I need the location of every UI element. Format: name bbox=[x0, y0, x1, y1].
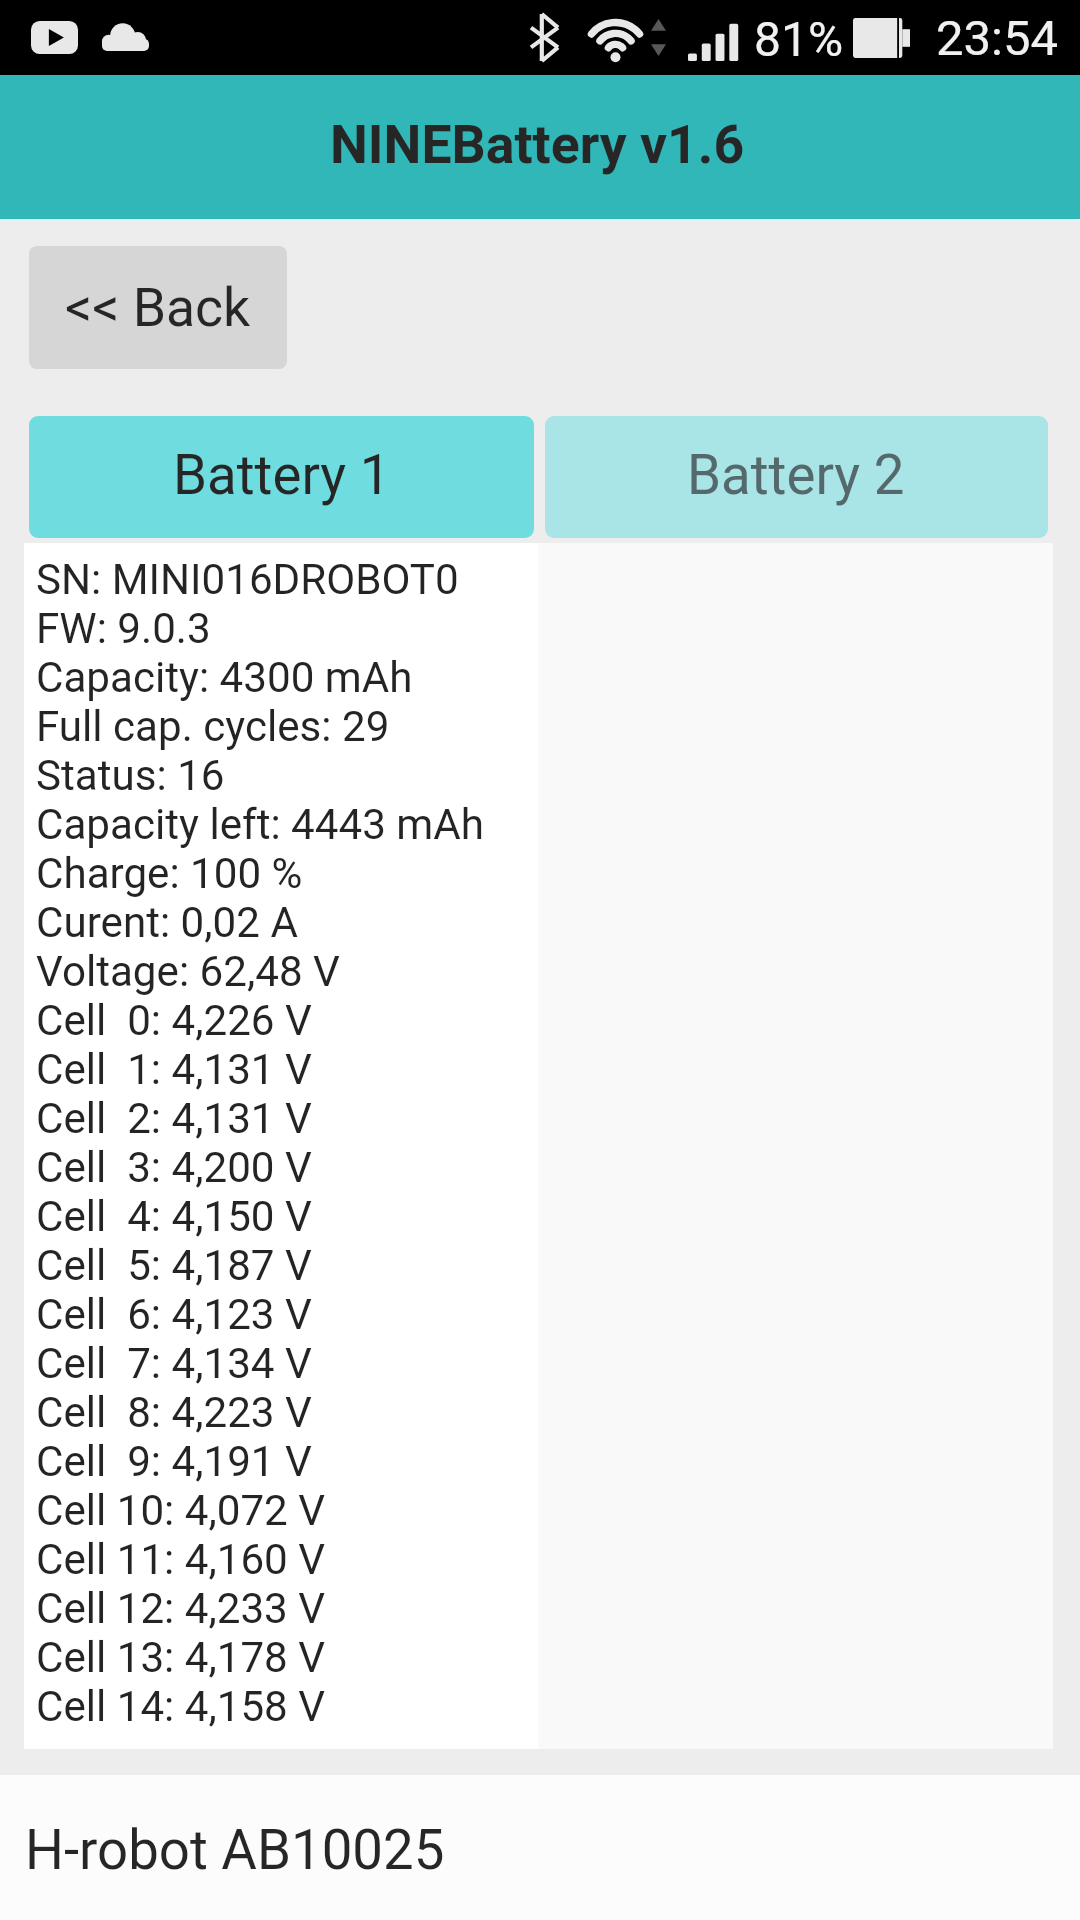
staticText: << Back bbox=[65, 276, 251, 339]
staticText: FW: 9.0.3 bbox=[36, 604, 211, 653]
staticText: Cell 2: 4,131 V bbox=[36, 1094, 312, 1143]
staticText: 23:54 bbox=[936, 10, 1059, 67]
staticText: Cell 12: 4,233 V bbox=[36, 1584, 326, 1633]
staticText: SN: MINI016DROBOT0 bbox=[36, 555, 459, 604]
staticText: H-robot AB10025 bbox=[25, 1818, 445, 1882]
staticText: Cell 9: 4,191 V bbox=[36, 1437, 312, 1486]
staticText: Cell 13: 4,178 V bbox=[36, 1633, 326, 1682]
staticText: Cell 5: 4,187 V bbox=[36, 1241, 312, 1290]
staticText: Cell 0: 4,226 V bbox=[36, 996, 312, 1045]
staticText: Full cap. cycles: 29 bbox=[36, 702, 390, 751]
staticText: Cell 14: 4,158 V bbox=[36, 1682, 326, 1731]
staticText: 81% bbox=[754, 11, 844, 67]
staticText: Voltage: 62,48 V bbox=[36, 947, 340, 996]
staticText: Cell 8: 4,223 V bbox=[36, 1388, 312, 1437]
staticText: Cell 7: 4,134 V bbox=[36, 1339, 312, 1388]
staticText: NINEBattery v1.6 bbox=[330, 113, 745, 176]
staticText: Capacity: 4300 mAh bbox=[36, 653, 413, 702]
staticText: Cell 10: 4,072 V bbox=[36, 1486, 326, 1535]
button[interactable]: Battery 1 tab bbox=[29, 416, 534, 538]
staticText: Cell 11: 4,160 V bbox=[36, 1535, 326, 1584]
staticText: Charge: 100 % bbox=[36, 849, 303, 898]
staticText: Cell 1: 4,131 V bbox=[36, 1045, 312, 1094]
staticText: Battery 1 bbox=[173, 443, 391, 507]
staticText: Cell 4: 4,150 V bbox=[36, 1192, 312, 1241]
staticText: Capacity left: 4443 mAh bbox=[36, 800, 484, 849]
staticText: Cell 3: 4,200 V bbox=[36, 1143, 312, 1192]
staticText: Curent: 0,02 A bbox=[36, 898, 298, 947]
button[interactable]: Back bbox=[29, 246, 287, 369]
staticText: Battery 2 bbox=[687, 443, 905, 507]
staticText: Status: 16 bbox=[36, 751, 225, 800]
staticText: Cell 6: 4,123 V bbox=[36, 1290, 312, 1339]
button[interactable]: Battery 2 tab bbox=[545, 416, 1048, 538]
